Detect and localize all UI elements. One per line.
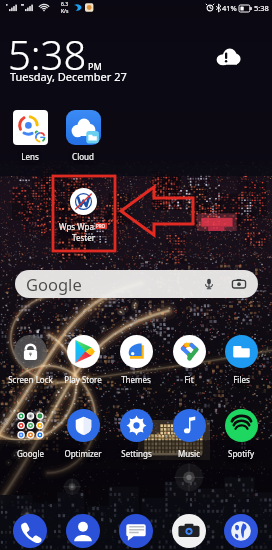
button[interactable]: Google [4,409,56,459]
button[interactable]: Cloud [57,110,109,162]
staticText: Google [26,273,82,295]
button[interactable]: Messages [116,511,156,550]
staticText: 5:38 [8,27,87,81]
button[interactable]: Browser [221,511,261,550]
button[interactable]: Contacts [63,511,103,550]
button[interactable]: Fit [163,335,215,385]
staticText: Music [178,448,200,459]
button[interactable]: Files [215,335,267,385]
staticText: 6.3 [61,1,69,8]
staticText: Play Store [64,374,102,385]
staticText: Google [17,448,44,459]
staticText: Spotify [228,448,254,459]
button[interactable]: Camera [169,511,209,550]
staticText: Tuesday, December 27 [10,69,127,84]
staticText: 41% [222,3,237,13]
staticText: Optimizer [64,448,102,459]
staticText: Fit [184,374,194,385]
button[interactable]: Google [15,270,258,298]
staticText: Lens [21,151,39,162]
staticText: PM [88,60,102,72]
button[interactable]: Optimizer [57,409,109,459]
button[interactable]: Settings [110,409,162,459]
staticText: Settings [121,448,152,459]
other: Voice search [202,277,216,291]
button[interactable]: Themes [110,335,162,385]
staticText: Themes [121,374,151,385]
button[interactable]: Lens [4,110,56,162]
staticText: Tester [72,232,95,243]
button[interactable]: Phone [10,511,50,550]
button[interactable]: Music [163,409,215,459]
button[interactable]: Screen Lock [4,335,56,385]
button[interactable]: Play Store [57,335,109,385]
staticText: PRO [96,223,106,229]
staticText: Cloud [72,151,94,162]
staticText: 5:38 [254,3,269,13]
other: Google Lens [231,276,247,292]
staticText: Screen Lock [8,374,53,385]
staticText: Wps Wpa [59,221,94,232]
staticText: K/s [61,8,69,15]
staticText: Files [233,374,250,385]
button[interactable]: Wps Wpa [57,188,109,243]
button[interactable]: Spotify [215,409,267,459]
